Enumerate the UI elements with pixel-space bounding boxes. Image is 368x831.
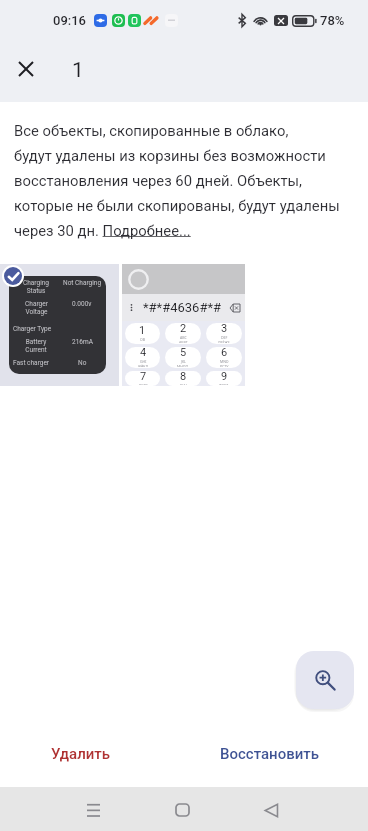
staticText: 7 (140, 371, 147, 383)
button[interactable]: Close (4, 47, 48, 91)
staticText: Battery Current (25, 338, 47, 354)
button[interactable]: Home (159, 787, 206, 831)
button[interactable]: Все объекты, скопированные в облако, буд… (14, 122, 340, 239)
button[interactable]: Zoom in (296, 651, 354, 709)
staticText: 3 (221, 323, 228, 335)
staticText: 1 (72, 58, 84, 83)
staticText: ОВ (140, 337, 145, 342)
staticText: 8 (180, 371, 187, 383)
staticText: 216mA (72, 338, 93, 346)
staticText: Charger Voltage (25, 300, 48, 316)
staticText: 9 (221, 371, 228, 383)
staticText: ДЕЁЖЗ (218, 340, 230, 343)
staticText: 6 (221, 347, 228, 359)
staticText: 5 (180, 347, 187, 359)
staticText: Fast charger (13, 359, 50, 367)
staticText: WXYZ (219, 383, 229, 385)
staticText: MNO (220, 359, 229, 364)
button[interactable]: *#*#4636#*# (122, 264, 245, 386)
staticText: *#*#4636#*# (143, 300, 222, 315)
staticText: 78% (320, 13, 345, 28)
staticText: TUV (180, 383, 187, 385)
button[interactable]: Recents (70, 787, 117, 831)
staticText: АБВГ (179, 340, 188, 343)
staticText: 0.000v (72, 300, 92, 308)
staticText: 09:16 (53, 13, 86, 28)
staticText: Удалить (51, 745, 111, 763)
staticText: РСТУ (220, 364, 229, 367)
staticText: JKL (181, 359, 186, 364)
button[interactable]: Back (248, 787, 295, 831)
staticText: 1 (139, 324, 146, 337)
staticText: 2 (180, 323, 187, 335)
button[interactable]: Восстановить (204, 733, 334, 775)
staticText: ИЙКЛ (138, 364, 148, 367)
staticText: No (78, 359, 87, 367)
staticText: Charger Type (13, 325, 52, 333)
staticText: ABC (180, 335, 187, 340)
button[interactable]: Удалить (37, 733, 125, 775)
staticText: PQRS (139, 383, 148, 385)
staticText: МНОП (177, 364, 189, 367)
staticText: 4 (140, 347, 147, 359)
button[interactable]: Charging Status (0, 264, 119, 386)
staticText: Восстановить (220, 745, 319, 763)
staticText: Not Charging (63, 279, 102, 287)
staticText: DEF (221, 335, 228, 340)
staticText: Charging Status (23, 279, 49, 295)
staticText: GHI (140, 359, 147, 364)
